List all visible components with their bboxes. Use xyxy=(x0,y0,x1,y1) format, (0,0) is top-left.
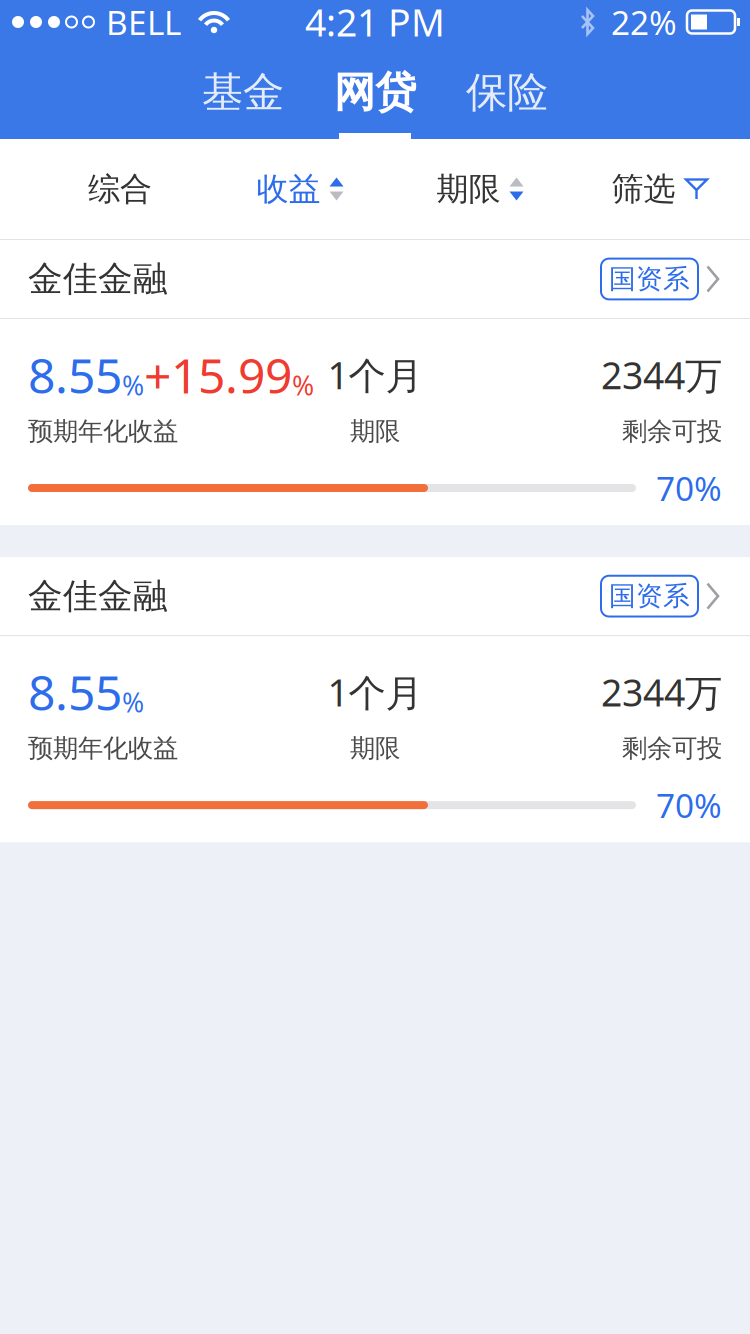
staticText: 筛选 xyxy=(611,169,675,209)
staticText: 2344万 xyxy=(601,350,722,400)
staticText: 8.55 xyxy=(28,343,122,407)
button[interactable]: 期限 xyxy=(390,169,570,209)
staticText: 网贷 xyxy=(334,67,416,118)
staticText: 1个月 xyxy=(327,667,422,717)
staticText: 收益 xyxy=(256,169,320,209)
staticText: 综合 xyxy=(88,169,152,209)
button[interactable]: 金佳金融 xyxy=(0,557,750,635)
staticText: BELL xyxy=(106,0,181,44)
staticText: 期限 xyxy=(436,169,500,209)
staticText: 保险 xyxy=(466,67,548,118)
button[interactable]: 收益 xyxy=(210,169,390,209)
button[interactable]: 综合 xyxy=(30,169,210,209)
staticText: % xyxy=(292,367,314,403)
staticText: % xyxy=(122,367,144,403)
button[interactable]: 网贷 xyxy=(334,67,416,139)
staticText: 金佳金融 xyxy=(28,575,168,617)
button[interactable]: 保险 xyxy=(466,67,548,139)
staticText: 8.55 xyxy=(28,660,122,724)
staticText: 预期年化收益 xyxy=(28,416,178,447)
staticText: +15.99 xyxy=(144,343,292,407)
staticText: 22% xyxy=(611,0,677,44)
staticText: 2344万 xyxy=(601,667,722,717)
button[interactable]: 金佳金融 xyxy=(0,240,750,318)
staticText: 70% xyxy=(656,783,722,827)
staticText: 1个月 xyxy=(327,350,422,400)
button[interactable]: 筛选 xyxy=(570,169,750,209)
staticText: 剩余可投 xyxy=(622,416,722,447)
button[interactable]: 基金 xyxy=(202,67,284,139)
staticText: 4:21 PM xyxy=(305,0,445,47)
staticText: 剩余可投 xyxy=(622,733,722,764)
staticText: 期限 xyxy=(350,416,400,447)
staticText: 基金 xyxy=(202,67,284,118)
staticText: % xyxy=(122,684,144,720)
staticText: 金佳金融 xyxy=(28,258,168,300)
staticText: 预期年化收益 xyxy=(28,733,178,764)
staticText: 国资系 xyxy=(609,580,690,612)
staticText: 期限 xyxy=(350,733,400,764)
staticText: 70% xyxy=(656,466,722,510)
staticText: 国资系 xyxy=(609,263,690,295)
